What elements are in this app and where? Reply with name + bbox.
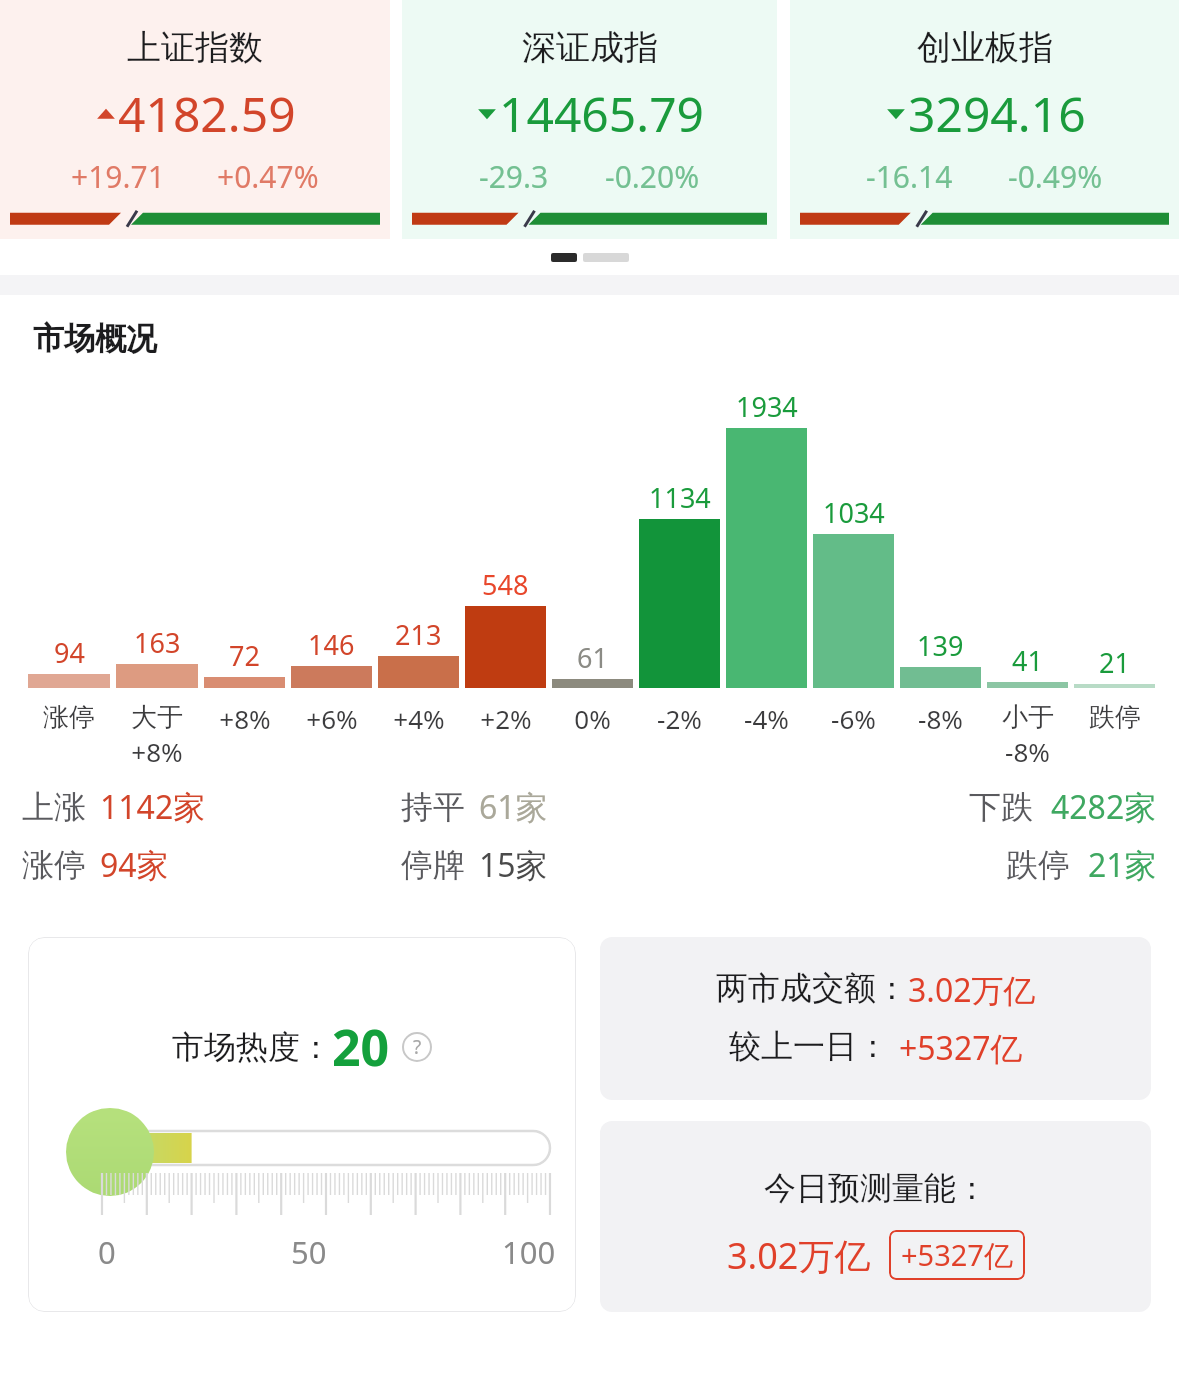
staticText: -6% xyxy=(831,701,876,736)
staticText: 50 xyxy=(291,1231,327,1273)
staticText: 1134 xyxy=(649,479,711,516)
button[interactable]: 深证成指 xyxy=(402,0,777,239)
staticText: -0.49% xyxy=(1008,156,1103,197)
staticText: 14465.79 xyxy=(499,81,705,146)
staticText: 0% xyxy=(574,701,611,736)
button[interactable]: 今日预测量能： xyxy=(600,1121,1151,1312)
staticText: 213 xyxy=(395,616,442,653)
staticText: 下跌 xyxy=(969,787,1033,827)
staticText: 3.02万亿 xyxy=(727,1231,871,1280)
staticText: 市场热度： xyxy=(172,1027,332,1067)
staticText: 小于 xyxy=(1002,701,1054,734)
staticText: 上证指数 xyxy=(127,26,263,69)
staticText: +8% xyxy=(219,701,271,736)
staticText: 139 xyxy=(917,627,964,664)
staticText: 停牌 xyxy=(401,845,465,885)
staticText: 涨停 xyxy=(22,845,86,885)
staticText: 21家 xyxy=(1088,843,1157,887)
staticText: 1934 xyxy=(736,388,798,425)
staticText: +19.71 xyxy=(71,156,165,197)
staticText: 3294.16 xyxy=(908,81,1086,146)
staticText: +5327亿 xyxy=(899,1026,1023,1070)
staticText: 94 xyxy=(54,634,85,671)
staticText: 21 xyxy=(1099,644,1130,681)
staticText: 0 xyxy=(98,1231,116,1273)
staticText: 163 xyxy=(134,624,181,661)
staticText: 跌停 xyxy=(1006,845,1070,885)
staticText: 20 xyxy=(332,1013,390,1081)
staticText: +2% xyxy=(480,701,532,736)
staticText: +8% xyxy=(131,734,183,769)
staticText: 41 xyxy=(1012,642,1043,679)
button[interactable]: 创业板指 xyxy=(790,0,1179,239)
staticText: 1034 xyxy=(823,494,885,531)
staticText: 创业板指 xyxy=(917,26,1053,69)
staticText: 上涨 xyxy=(22,787,86,827)
staticText: 548 xyxy=(482,566,529,603)
staticText: 3.02万亿 xyxy=(908,968,1036,1012)
staticText: -4% xyxy=(744,701,789,736)
staticText: -8% xyxy=(918,701,963,736)
staticText: 深证成指 xyxy=(522,26,658,69)
staticText: +4% xyxy=(393,701,445,736)
staticText: -16.14 xyxy=(866,156,953,197)
button[interactable]: 上证指数 xyxy=(0,0,390,239)
staticText: 今日预测量能： xyxy=(764,1168,988,1208)
staticText: 4282家 xyxy=(1051,785,1157,829)
staticText: 146 xyxy=(308,626,355,663)
staticText: 跌停 xyxy=(1089,701,1141,734)
button[interactable]: 两市成交额： xyxy=(600,937,1151,1100)
staticText: 61家 xyxy=(479,785,548,829)
staticText: -8% xyxy=(1005,734,1050,769)
staticText: 100 xyxy=(502,1231,556,1273)
staticText: 94家 xyxy=(100,843,169,887)
staticText: +6% xyxy=(306,701,358,736)
staticText: 市场概况 xyxy=(33,319,157,358)
button[interactable]: 市场热度说明 xyxy=(402,1032,432,1062)
staticText: 持平 xyxy=(401,787,465,827)
staticText: -0.20% xyxy=(605,156,700,197)
staticText: 1142家 xyxy=(100,785,206,829)
staticText: 4182.59 xyxy=(118,81,296,146)
staticText: 72 xyxy=(229,637,260,674)
staticText: 两市成交额： xyxy=(716,968,908,1008)
staticText: 较上一日： xyxy=(729,1026,889,1066)
staticText: +0.47% xyxy=(217,156,319,197)
staticText: -29.3 xyxy=(479,156,549,197)
staticText: 涨停 xyxy=(43,701,95,734)
button[interactable]: 市场热度： xyxy=(28,937,576,1312)
staticText: -2% xyxy=(657,701,702,736)
staticText: 61 xyxy=(577,639,608,676)
staticText: 15家 xyxy=(479,843,548,887)
staticText: 大于 xyxy=(131,701,183,734)
staticText: ? xyxy=(413,1034,422,1060)
staticText: +5327亿 xyxy=(901,1235,1013,1275)
